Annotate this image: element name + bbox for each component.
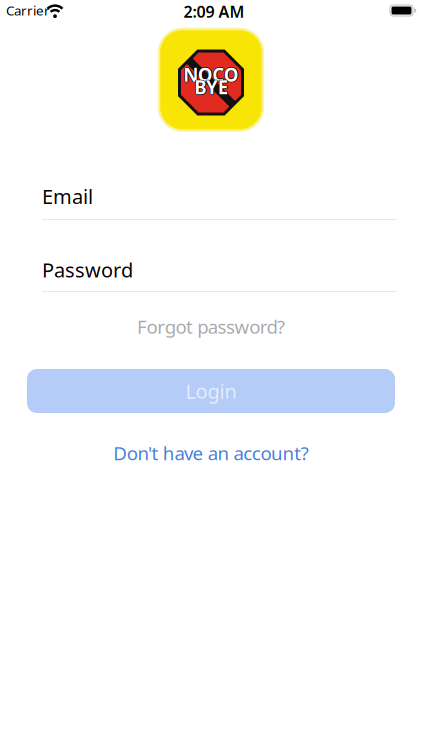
- staticText: Don't have an account?: [113, 440, 309, 465]
- staticText: Password: [42, 256, 133, 283]
- staticText: BYE: [194, 74, 228, 99]
- button[interactable]: Login: [27, 369, 395, 413]
- staticText: 2:09 AM: [183, 1, 244, 22]
- staticText: BYE: [194, 75, 228, 100]
- staticText: Carrier: [6, 1, 50, 19]
- staticText: NOCO: [183, 63, 239, 87]
- button[interactable]: Password: [42, 256, 396, 292]
- staticText: NOCO: [184, 62, 239, 87]
- staticText: BYE: [195, 75, 228, 99]
- staticText: NOCO: [183, 61, 239, 86]
- staticText: Login: [185, 378, 236, 404]
- staticText: BYE: [194, 75, 228, 99]
- button[interactable]: Email: [42, 183, 396, 220]
- button[interactable]: Don't have an account?: [113, 440, 309, 465]
- staticText: BYE: [194, 75, 227, 99]
- staticText: NOCO: [183, 62, 238, 87]
- button[interactable]: Forgot password?: [137, 314, 285, 339]
- staticText: Forgot password?: [137, 314, 285, 339]
- staticText: Email: [42, 183, 93, 210]
- staticText: NOCO: [183, 62, 239, 87]
